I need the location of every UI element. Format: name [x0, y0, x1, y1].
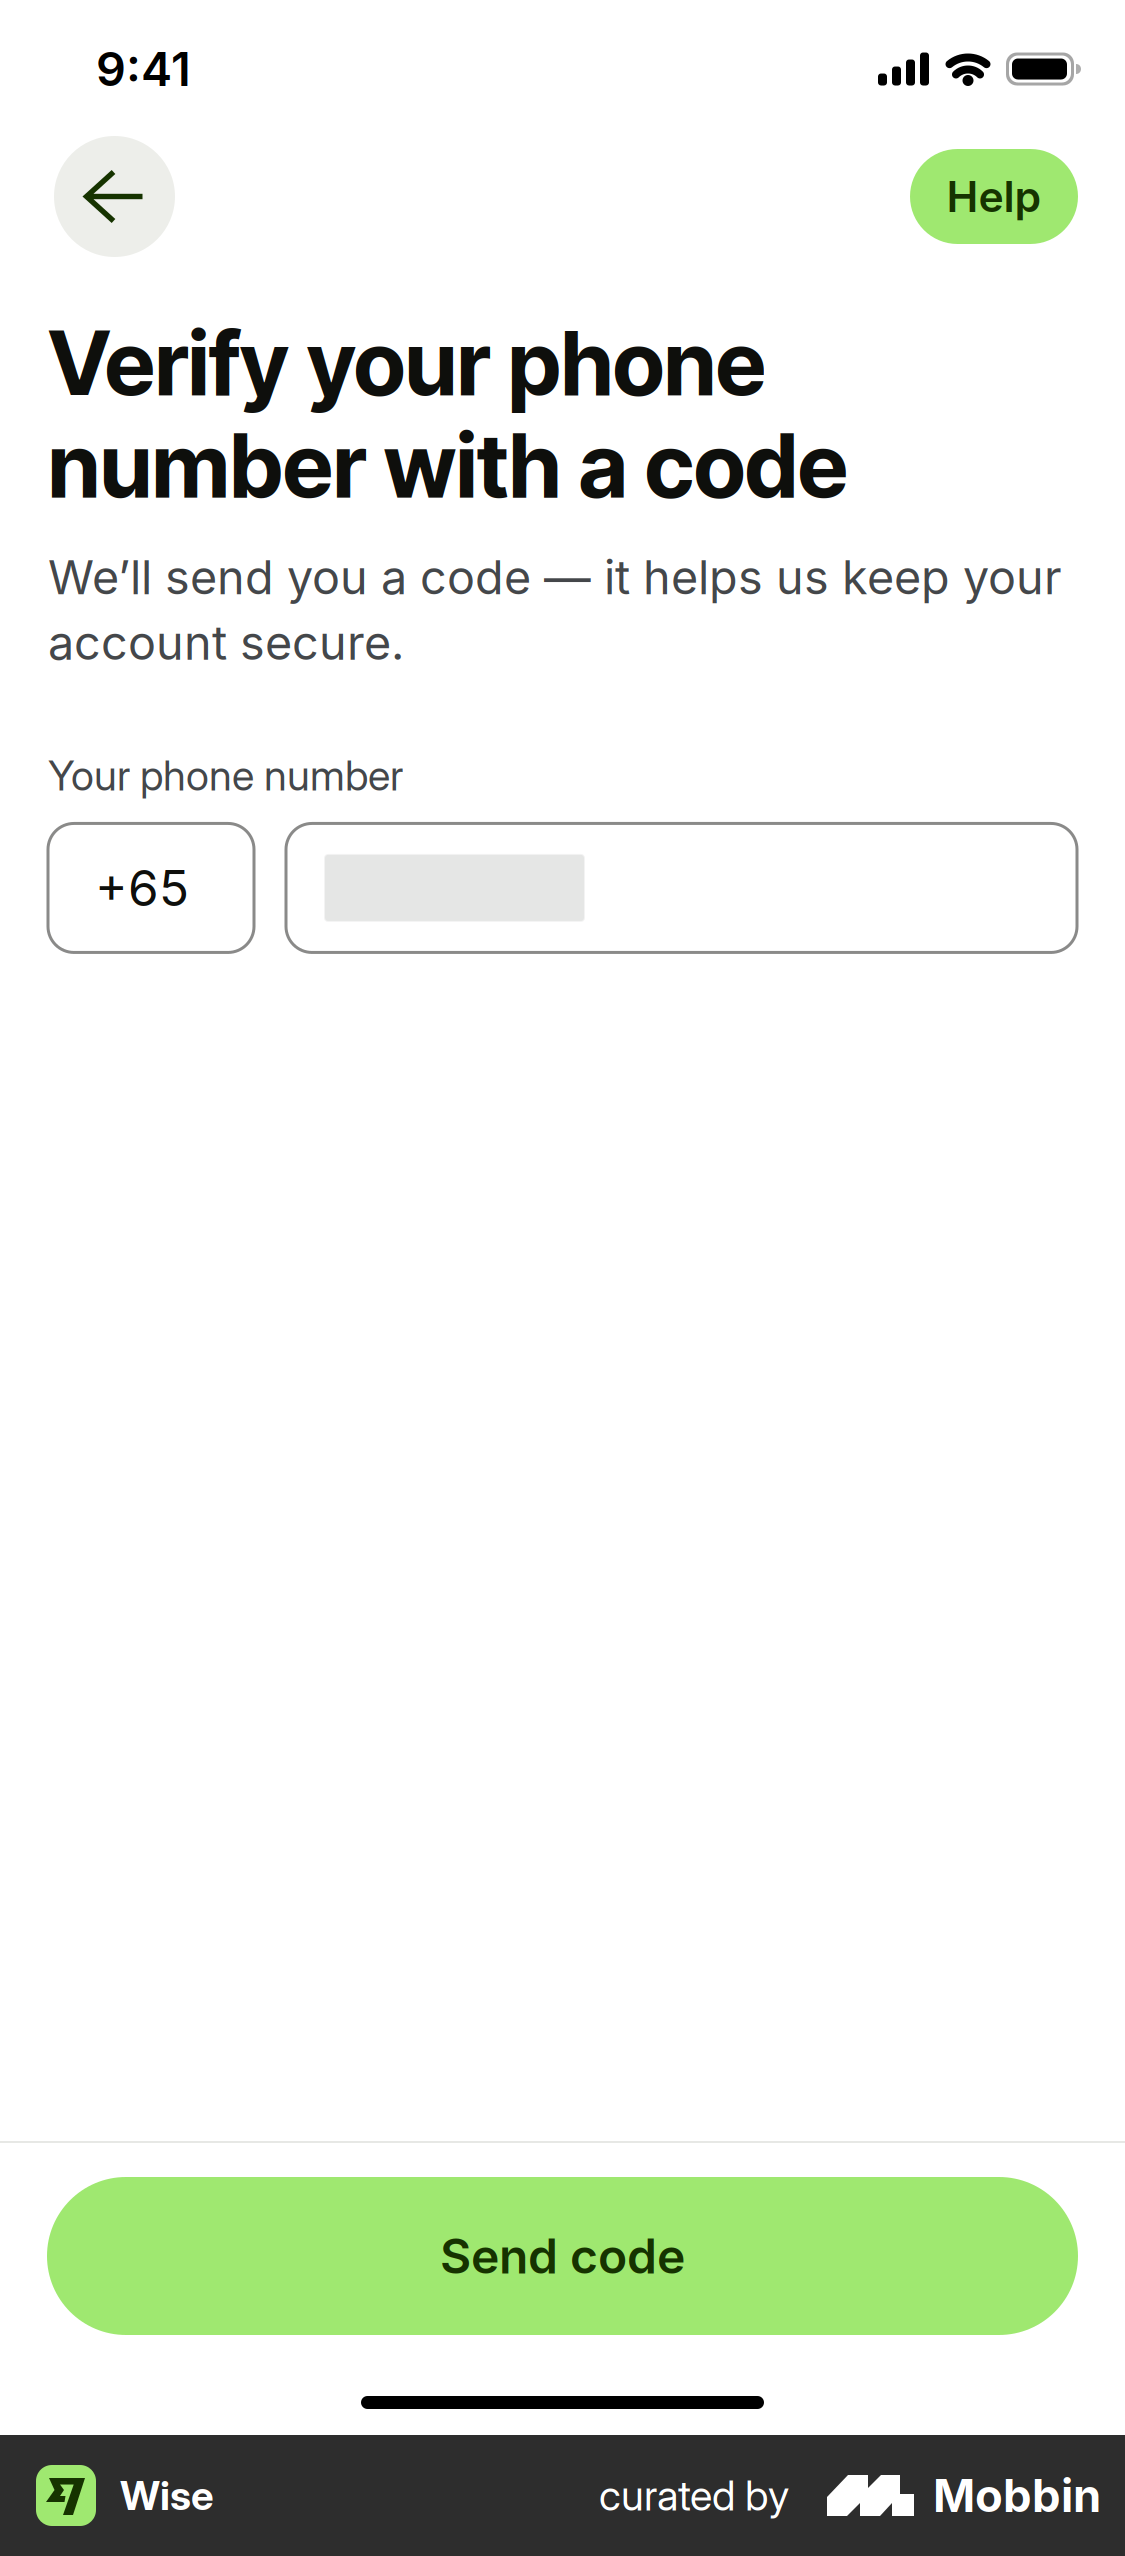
staticText: curated by [599, 2470, 789, 2520]
staticText: Wise [120, 2471, 214, 2520]
button[interactable]: Phone number [286, 823, 1077, 952]
staticText: 9:41 [96, 41, 191, 97]
staticText: Help [946, 171, 1041, 222]
button[interactable]: +65 [48, 823, 254, 952]
staticText: We’ll send you a code — it helps us keep… [48, 544, 1062, 675]
button[interactable]: Send code [47, 2177, 1078, 2335]
button[interactable]: Help [910, 149, 1078, 244]
staticText: Your phone number [48, 750, 403, 800]
staticText: Mobbin [933, 2468, 1101, 2523]
button[interactable]: Go back [54, 136, 175, 257]
staticText: Send code [440, 2227, 685, 2285]
staticText: +65 [95, 858, 189, 918]
staticText: Verify your phone number with a code [48, 312, 848, 516]
